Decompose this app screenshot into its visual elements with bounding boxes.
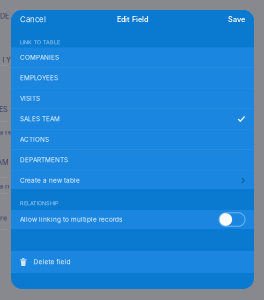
staticText: Create a new table: [20, 177, 80, 184]
staticText: EMPLOYEES: [20, 74, 58, 82]
button[interactable]: VISITS: [11, 88, 254, 108]
staticText: COMPANIES: [20, 54, 59, 61]
staticText: Save: [228, 15, 245, 24]
staticText: Y TY: [0, 56, 11, 64]
staticText: Edit Field: [117, 15, 148, 24]
button[interactable]: DEPARTMENTS: [11, 150, 254, 170]
button[interactable]: Allow linking to multiple records: [11, 210, 254, 229]
button[interactable]: Delete field: [11, 251, 254, 273]
staticText: RELATIONSHIP: [20, 200, 58, 206]
button[interactable]: Create a new table: [11, 170, 254, 190]
staticText: ODE: [0, 12, 9, 20]
staticText: Cancel: [20, 15, 46, 24]
staticText: Delete field: [34, 258, 71, 266]
staticText: VISITS: [20, 95, 40, 102]
staticText: a n: [0, 182, 9, 190]
button[interactable]: Save: [219, 10, 254, 29]
staticText: a re: [0, 128, 12, 136]
staticText: AM: [0, 158, 9, 167]
button[interactable]: Cancel: [11, 10, 55, 29]
button[interactable]: EMPLOYEES: [11, 68, 254, 88]
staticText: LINK TO TABLE: [20, 39, 60, 45]
staticText: DEPARTMENTS: [20, 156, 68, 164]
button[interactable]: SALES TEAM: [11, 109, 254, 129]
staticText: Allow linking to multiple records: [20, 216, 122, 223]
staticText: re: [0, 214, 7, 222]
button[interactable]: COMPANIES: [11, 47, 254, 67]
staticText: ACTIONS: [20, 136, 49, 143]
staticText: ES: [0, 105, 8, 114]
staticText: SALES TEAM: [20, 115, 60, 123]
button[interactable]: ACTIONS: [11, 129, 254, 149]
